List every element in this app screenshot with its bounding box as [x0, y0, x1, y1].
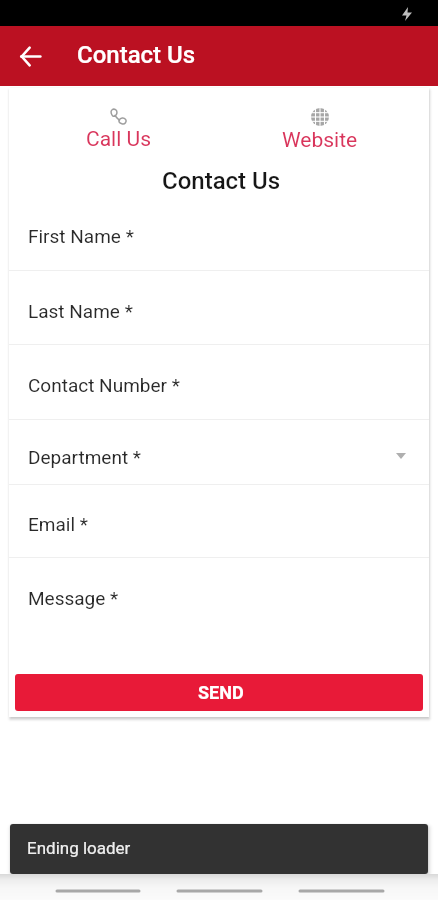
button[interactable]: Message * [9, 558, 429, 669]
button[interactable]: Call Us [18, 108, 219, 152]
staticText: Contact Us [77, 41, 196, 69]
button[interactable]: SEND [15, 674, 423, 711]
button[interactable]: Last Name * [9, 271, 429, 344]
staticText: Contact Us [162, 167, 281, 195]
staticText: Last Name * [28, 300, 133, 322]
staticText: Message * [28, 587, 119, 609]
staticText: SEND [198, 682, 244, 703]
button[interactable]: First Name * [9, 196, 429, 270]
button[interactable]: Website [219, 108, 420, 153]
button[interactable]: Contact Number * [9, 345, 429, 419]
button[interactable]: Back [8, 34, 52, 78]
staticText: Call Us [86, 127, 151, 152]
button[interactable]: Department * [9, 420, 429, 484]
staticText: First Name * [28, 225, 134, 247]
staticText: Department * [28, 446, 142, 468]
staticText: Email * [28, 513, 88, 535]
staticText: Website [282, 128, 358, 153]
staticText: Ending loader [27, 838, 131, 858]
button[interactable]: Email * [9, 485, 429, 557]
staticText: Contact Number * [28, 374, 180, 396]
